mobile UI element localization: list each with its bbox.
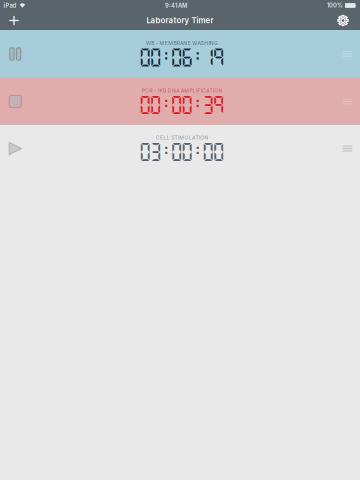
button[interactable]: WB - MEMBRANE WASHING [0,30,360,78]
staticText: 9:41 AM [165,2,187,9]
staticText: WB - MEMBRANE WASHING [146,40,218,46]
button[interactable]: Add timer [0,11,28,30]
staticText: 03:00:00 [138,140,226,162]
staticText: iPad [3,2,16,9]
button[interactable]: PCR - 1KB DNA AMPLIFICATION [0,78,360,125]
button[interactable]: Settings [326,11,360,30]
staticText: Laboratory Timer [146,16,213,25]
button[interactable]: CELL STIMULATION [0,125,360,172]
staticText: PCR - 1KB DNA AMPLIFICATION [142,87,222,94]
staticText: CELL STIMULATION [156,134,208,141]
staticText: 100% [327,2,343,9]
staticText: 00:00:39 [138,93,226,115]
staticText: 00:06:19 [138,46,226,68]
